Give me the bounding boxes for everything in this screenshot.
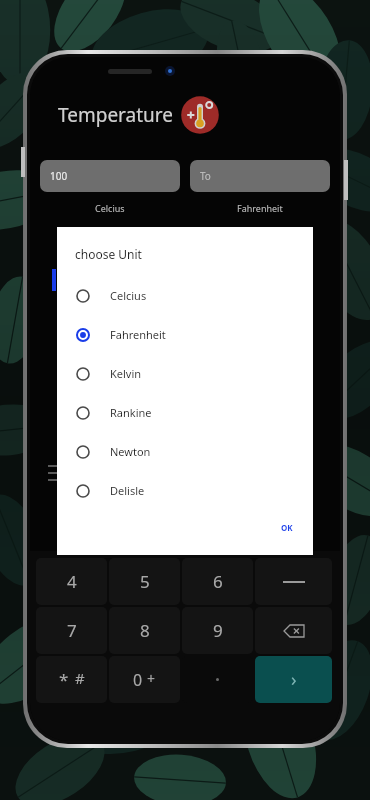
button[interactable]: Fahrenheit xyxy=(57,315,313,354)
staticText: › xyxy=(291,667,297,692)
button[interactable]: Key ⌫ xyxy=(255,607,332,654)
button[interactable]: Key › xyxy=(255,656,332,703)
button[interactable]: Kelvin xyxy=(57,354,313,393)
staticText: Fahrenheit xyxy=(110,327,166,342)
staticText: To xyxy=(200,169,211,183)
staticText: 4 xyxy=(67,570,77,593)
button[interactable]: Key *# xyxy=(36,656,107,703)
staticText: 6 xyxy=(213,570,223,593)
other: Temperature icon xyxy=(180,95,220,135)
staticText: * xyxy=(59,668,69,691)
staticText: # xyxy=(75,668,85,688)
staticText: OK xyxy=(281,522,293,533)
button[interactable]: Key 7 xyxy=(36,607,107,654)
button[interactable]: Key 9 xyxy=(182,607,253,654)
staticText: Celcius xyxy=(95,202,125,214)
staticText: Celcius xyxy=(110,288,147,303)
staticText: Kelvin xyxy=(110,366,142,381)
staticText: 9 xyxy=(213,619,223,642)
staticText: Delisle xyxy=(110,483,145,498)
button[interactable]: Key — xyxy=(255,558,332,605)
staticText: 5 xyxy=(140,570,150,593)
button[interactable]: Key · xyxy=(182,656,253,703)
staticText: 7 xyxy=(67,619,77,642)
button[interactable]: OK xyxy=(261,512,313,543)
staticText: Rankine xyxy=(110,405,152,420)
button[interactable]: Rankine xyxy=(57,393,313,432)
button[interactable]: Key 5 xyxy=(109,558,180,605)
button[interactable]: To xyxy=(190,160,330,192)
button[interactable]: Key 0+ xyxy=(109,656,180,703)
staticText: 100 xyxy=(50,169,68,183)
button[interactable]: Key 4 xyxy=(36,558,107,605)
staticText: 8 xyxy=(140,619,150,642)
staticText: Newton xyxy=(110,444,151,459)
button[interactable]: Newton xyxy=(57,432,313,471)
button[interactable]: 100 xyxy=(40,160,180,192)
button[interactable]: Key 6 xyxy=(182,558,253,605)
staticText: + xyxy=(147,669,156,688)
staticText: 0 xyxy=(133,669,143,691)
button[interactable]: Key 8 xyxy=(109,607,180,654)
button[interactable]: Celcius xyxy=(57,276,313,315)
staticText: Temperature xyxy=(58,102,174,128)
button[interactable]: Delisle xyxy=(57,471,313,510)
staticText: choose Unit xyxy=(75,246,142,262)
staticText: Fahrenheit xyxy=(237,202,283,214)
